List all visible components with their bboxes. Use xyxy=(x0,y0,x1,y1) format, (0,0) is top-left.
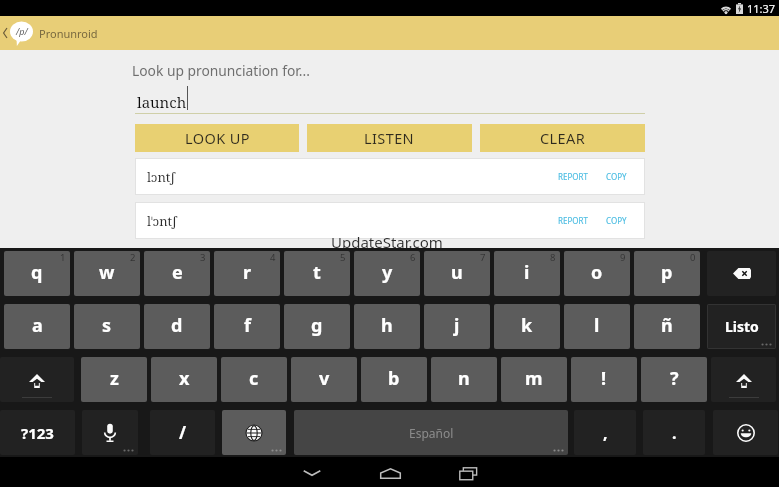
staticText: h xyxy=(381,313,393,338)
staticText: 7 xyxy=(480,251,486,264)
button[interactable]: y xyxy=(354,251,420,296)
button[interactable]: r xyxy=(214,251,280,296)
button[interactable]: LOOK UP xyxy=(135,124,299,152)
button[interactable]: lɔntʃ xyxy=(135,158,645,195)
button[interactable]: Emoji xyxy=(713,410,778,455)
staticText: w xyxy=(99,260,115,285)
button[interactable]: Navigate up xyxy=(0,16,10,50)
staticText: t xyxy=(313,260,321,285)
staticText: ? xyxy=(670,366,679,391)
button[interactable]: / xyxy=(150,410,215,455)
staticText: LISTEN xyxy=(364,128,415,148)
staticText: LOOK UP xyxy=(185,128,250,148)
button[interactable]: REPORT xyxy=(550,207,596,234)
staticText: d xyxy=(171,313,183,338)
staticText: k xyxy=(521,313,533,338)
button[interactable]: z xyxy=(81,357,147,402)
button[interactable]: ? xyxy=(641,357,707,402)
staticText: b xyxy=(388,366,400,391)
staticText: REPORT xyxy=(558,215,588,226)
button[interactable]: CLEAR xyxy=(480,124,645,152)
staticText: e xyxy=(172,260,183,285)
button[interactable]: u xyxy=(424,251,490,296)
staticText: u xyxy=(451,260,463,285)
button[interactable]: p xyxy=(634,251,700,296)
button[interactable]: l xyxy=(564,304,630,349)
button[interactable]: REPORT xyxy=(550,163,596,190)
staticText: z xyxy=(110,366,119,391)
staticText: c xyxy=(249,366,259,391)
button[interactable]: c xyxy=(221,357,287,402)
button[interactable]: ?123 xyxy=(0,410,75,455)
staticText: ! xyxy=(601,366,607,391)
staticText: Español xyxy=(409,425,454,441)
button[interactable]: b xyxy=(361,357,427,402)
button[interactable]: Shift xyxy=(0,357,74,402)
staticText: n xyxy=(458,366,470,391)
staticText: r xyxy=(243,260,252,285)
button[interactable]: Hide keyboard xyxy=(273,458,351,487)
button[interactable]: COPY xyxy=(596,163,645,190)
button[interactable]: v xyxy=(291,357,357,402)
button[interactable]: h xyxy=(354,304,420,349)
staticText: 2 xyxy=(130,251,136,264)
button[interactable]: Backspace xyxy=(707,251,776,296)
staticText: a xyxy=(32,313,43,338)
button[interactable]: x xyxy=(151,357,217,402)
button[interactable]: o xyxy=(564,251,630,296)
staticText: v xyxy=(319,366,330,391)
button[interactable]: w xyxy=(74,251,140,296)
button[interactable]: Voice input xyxy=(82,410,138,455)
staticText: REPORT xyxy=(558,171,588,182)
button[interactable]: , xyxy=(574,410,636,455)
staticText: lɔntʃ xyxy=(147,168,175,186)
button[interactable]: f xyxy=(214,304,280,349)
staticText: m xyxy=(525,366,543,391)
button[interactable]: . xyxy=(643,410,705,455)
staticText: 1 xyxy=(60,251,66,264)
staticText: COPY xyxy=(606,215,627,226)
staticText: . xyxy=(672,422,677,444)
button[interactable]: e xyxy=(144,251,210,296)
staticText: p xyxy=(661,260,673,285)
button[interactable]: g xyxy=(284,304,350,349)
staticText: g xyxy=(311,313,323,338)
button[interactable]: m xyxy=(501,357,567,402)
button[interactable]: COPY xyxy=(596,207,645,234)
staticText: UpdateStar.com xyxy=(331,232,443,252)
button[interactable]: ñ xyxy=(634,304,700,349)
staticText: CLEAR xyxy=(540,128,586,148)
staticText: 0 xyxy=(690,251,696,264)
button[interactable]: q xyxy=(4,251,70,296)
button[interactable]: s xyxy=(74,304,140,349)
button[interactable]: Listo xyxy=(707,304,776,349)
button[interactable]: j xyxy=(424,304,490,349)
staticText: launch xyxy=(137,92,187,112)
staticText: q xyxy=(31,260,43,285)
staticText: f xyxy=(244,313,251,338)
button[interactable]: i xyxy=(494,251,560,296)
button[interactable]: t xyxy=(284,251,350,296)
button[interactable]: Español xyxy=(294,410,568,455)
button[interactable]: Recent apps xyxy=(429,458,507,487)
button[interactable]: d xyxy=(144,304,210,349)
staticText: COPY xyxy=(606,171,627,182)
button[interactable]: lˈɔntʃ xyxy=(135,202,645,239)
staticText: s xyxy=(102,313,112,338)
staticText: /p/ xyxy=(16,25,28,37)
button[interactable]: n xyxy=(431,357,497,402)
button[interactable]: Home xyxy=(351,458,429,487)
button[interactable]: a xyxy=(4,304,70,349)
staticText: / xyxy=(179,421,187,444)
button[interactable]: k xyxy=(494,304,560,349)
staticText: 6 xyxy=(410,251,416,264)
button[interactable]: ! xyxy=(571,357,637,402)
button[interactable]: Change keyboard xyxy=(222,410,286,455)
staticText: Look up pronunciation for... xyxy=(132,61,310,80)
staticText: 3 xyxy=(200,251,206,264)
button[interactable]: LISTEN xyxy=(307,124,472,152)
staticText: o xyxy=(591,260,603,285)
staticText: 11:37 xyxy=(747,1,776,16)
button[interactable]: Shift xyxy=(711,357,776,402)
staticText: Pronunroid xyxy=(39,26,98,41)
